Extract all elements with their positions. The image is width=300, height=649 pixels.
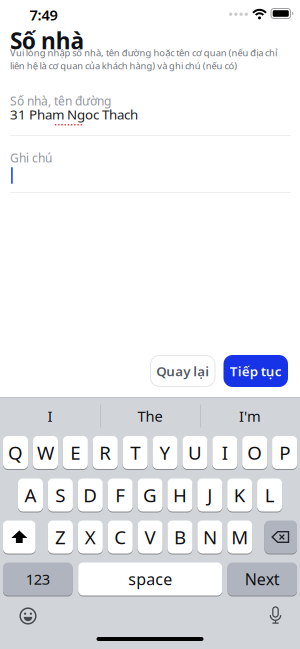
staticText: Next bbox=[245, 568, 280, 590]
button[interactable] bbox=[13, 601, 43, 631]
staticText: I'm bbox=[239, 406, 261, 426]
button[interactable]: B bbox=[167, 520, 192, 554]
button[interactable]: I bbox=[212, 435, 237, 469]
staticText: I bbox=[222, 440, 228, 465]
staticText: 31 Pham Ngoc Thach bbox=[10, 105, 138, 123]
staticText: space bbox=[128, 568, 172, 590]
staticText: Số nhà, tên đường bbox=[10, 93, 111, 109]
button[interactable]: V bbox=[137, 520, 163, 554]
staticText: H bbox=[173, 483, 187, 507]
button[interactable]: M bbox=[227, 520, 252, 554]
staticText: I bbox=[47, 406, 52, 426]
button[interactable]: Tiếp tục bbox=[223, 355, 288, 387]
staticText: Y bbox=[160, 440, 171, 465]
staticText: X bbox=[85, 525, 96, 549]
staticText: K bbox=[234, 483, 246, 507]
staticText: The bbox=[137, 406, 162, 426]
button[interactable]: O bbox=[242, 435, 267, 469]
button[interactable]: Ghi chú bbox=[10, 150, 300, 190]
button[interactable]: X bbox=[78, 520, 103, 554]
button[interactable]: T bbox=[123, 435, 148, 469]
button[interactable]: Z bbox=[48, 520, 73, 554]
staticText: A bbox=[24, 483, 36, 507]
button[interactable]: H bbox=[167, 478, 192, 512]
button[interactable] bbox=[260, 600, 290, 630]
button[interactable]: I bbox=[1, 401, 99, 431]
button[interactable]: N bbox=[197, 520, 222, 554]
button[interactable]: Số nhà, tên đường bbox=[10, 93, 300, 137]
button[interactable]: K bbox=[227, 478, 252, 512]
button[interactable]: F bbox=[108, 478, 133, 512]
button[interactable]: Y bbox=[152, 435, 178, 469]
button[interactable]: E bbox=[63, 435, 88, 469]
staticText: L bbox=[265, 483, 275, 507]
button[interactable]: space bbox=[78, 562, 222, 596]
staticText: J bbox=[207, 483, 212, 507]
staticText: E bbox=[70, 440, 80, 465]
button[interactable]: 123 bbox=[3, 562, 72, 596]
button[interactable]: The bbox=[101, 401, 199, 431]
button[interactable] bbox=[3, 520, 36, 554]
staticText: R bbox=[99, 440, 111, 465]
button[interactable]: A bbox=[18, 478, 43, 512]
staticText: Vui lòng nhập số nhà, tên đường hoặc tên… bbox=[10, 46, 277, 59]
button[interactable]: P bbox=[272, 435, 297, 469]
staticText: liên hệ là cơ quan của khách hàng) và gh… bbox=[10, 59, 237, 72]
staticText: U bbox=[188, 440, 202, 465]
staticText: O bbox=[247, 440, 262, 465]
button[interactable]: W bbox=[33, 435, 58, 469]
staticText: Z bbox=[55, 525, 66, 549]
button[interactable]: Quay lại bbox=[150, 355, 215, 386]
staticText: P bbox=[279, 440, 290, 465]
button[interactable]: C bbox=[108, 520, 133, 554]
staticText: B bbox=[174, 525, 186, 549]
staticText: S bbox=[55, 483, 65, 507]
staticText: N bbox=[203, 525, 217, 549]
button[interactable]: I'm bbox=[201, 401, 299, 431]
staticText: D bbox=[83, 483, 97, 507]
button[interactable]: S bbox=[48, 478, 73, 512]
button[interactable]: Next bbox=[227, 562, 297, 596]
button[interactable]: U bbox=[182, 435, 207, 469]
button[interactable]: J bbox=[197, 478, 222, 512]
staticText: 7:49 bbox=[29, 5, 57, 24]
staticText: W bbox=[37, 440, 54, 465]
button[interactable]: R bbox=[93, 435, 118, 469]
staticText: G bbox=[143, 483, 157, 507]
button[interactable] bbox=[264, 520, 297, 554]
staticText: Quay lại bbox=[156, 362, 209, 380]
staticText: Q bbox=[8, 440, 23, 465]
staticText: 123 bbox=[26, 569, 50, 589]
button[interactable]: L bbox=[257, 478, 282, 512]
staticText: Số nhà bbox=[10, 25, 84, 56]
staticText: F bbox=[115, 483, 125, 507]
staticText: C bbox=[114, 525, 126, 549]
staticText: T bbox=[130, 440, 140, 465]
staticText: Tiếp tục bbox=[230, 362, 282, 380]
button[interactable]: G bbox=[137, 478, 163, 512]
staticText: V bbox=[145, 525, 156, 549]
staticText: M bbox=[231, 525, 248, 549]
staticText: Ghi chú bbox=[10, 150, 52, 166]
button[interactable]: Q bbox=[3, 435, 28, 469]
button[interactable]: D bbox=[78, 478, 103, 512]
